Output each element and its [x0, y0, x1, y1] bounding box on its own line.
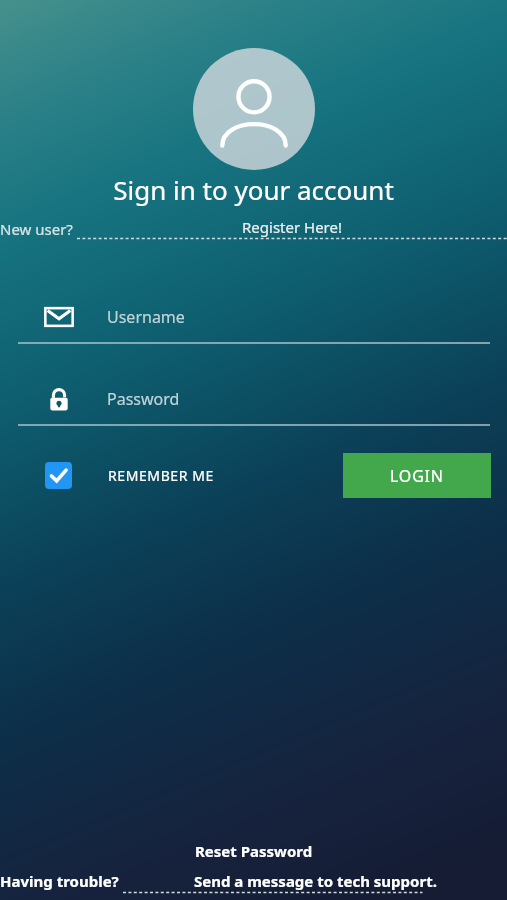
staticText: Password: [107, 388, 180, 410]
button[interactable]: Password: [0, 374, 507, 424]
staticText: Register Here!: [242, 217, 343, 237]
button[interactable]: REMEMBER ME: [45, 462, 214, 489]
button[interactable]: Register Here!: [77, 217, 507, 240]
other: Password: [44, 384, 74, 414]
button[interactable]: Email: [0, 292, 507, 342]
button[interactable]: LOGIN: [343, 453, 491, 498]
staticText: REMEMBER ME: [108, 466, 214, 485]
staticText: Having trouble?: [0, 871, 123, 891]
button[interactable]: Reset Password: [195, 841, 313, 861]
staticText: New user?: [0, 219, 77, 239]
staticText: LOGIN: [390, 465, 444, 487]
staticText: Username: [107, 306, 185, 328]
staticText: Reset Password: [195, 841, 313, 861]
button[interactable]: Send a message to tech support.: [123, 871, 507, 894]
other: Email: [44, 302, 74, 332]
staticText: Send a message to tech support.: [194, 871, 437, 891]
staticText: Sign in to your account: [113, 172, 394, 207]
